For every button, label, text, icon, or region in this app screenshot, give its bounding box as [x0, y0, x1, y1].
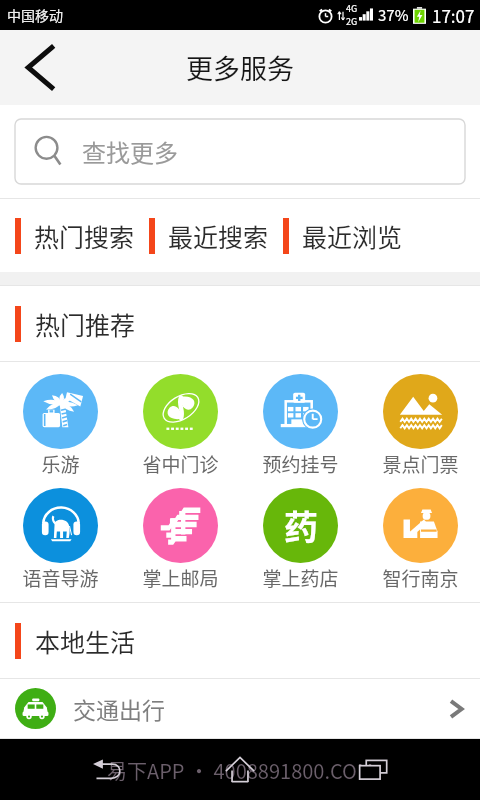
button[interactable]: Back: [76, 739, 138, 800]
button[interactable]: 语音导游: [0, 488, 120, 592]
staticText: 乐游: [41, 450, 80, 478]
button[interactable]: 景点门票: [360, 374, 480, 478]
staticText: 17:07: [432, 3, 475, 28]
staticText: 热门搜索: [34, 218, 135, 254]
staticText: 掌上邮局: [142, 564, 219, 592]
button[interactable]: 查找更多: [15, 119, 465, 184]
staticText: 预约挂号: [262, 450, 339, 478]
staticText: 易下APP • 4008891800.COM: [107, 756, 374, 785]
staticText: 37%: [378, 4, 409, 26]
button[interactable]: 省中门诊: [120, 374, 240, 478]
button[interactable]: 乐游: [0, 374, 120, 478]
button[interactable]: 热门搜索: [0, 218, 135, 254]
staticText: 本地生活: [35, 623, 136, 659]
staticText: 更多服务: [186, 48, 294, 87]
button[interactable]: 最近浏览: [269, 218, 403, 254]
button[interactable]: Home: [209, 739, 271, 800]
staticText: 最近浏览: [302, 218, 403, 254]
staticText: 查找更多: [82, 134, 178, 169]
button[interactable]: 智行南京: [360, 488, 480, 592]
staticText: 交通出行: [73, 692, 165, 725]
staticText: 2G: [346, 15, 358, 28]
button[interactable]: 掌上邮局: [120, 488, 240, 592]
button[interactable]: 最近搜索: [135, 218, 269, 254]
button[interactable]: Back: [0, 30, 80, 105]
button[interactable]: 药: [240, 488, 360, 592]
staticText: 药: [284, 501, 318, 550]
staticText: 语音导游: [22, 564, 99, 592]
staticText: 最近搜索: [168, 218, 269, 254]
staticText: 中国移动: [7, 5, 63, 25]
staticText: 掌上药店: [262, 564, 339, 592]
staticText: 4G: [346, 2, 358, 15]
staticText: 景点门票: [382, 450, 459, 478]
button[interactable]: Recent apps: [342, 739, 404, 800]
staticText: 省中门诊: [142, 450, 219, 478]
button[interactable]: 交通出行: [0, 679, 480, 738]
staticText: 智行南京: [382, 564, 459, 592]
button[interactable]: 预约挂号: [240, 374, 360, 478]
staticText: 热门推荐: [35, 306, 136, 342]
